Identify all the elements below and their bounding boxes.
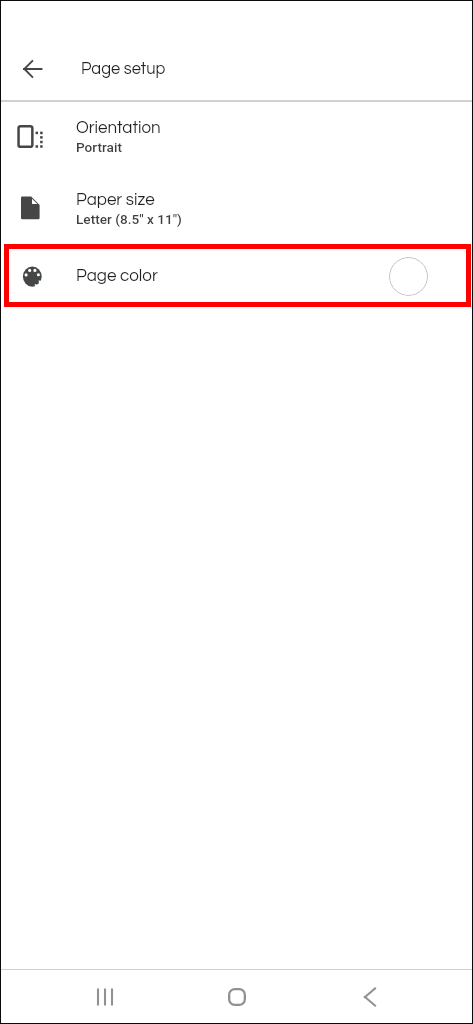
button[interactable]: Orientation — [0, 102, 473, 174]
staticText: Portrait — [76, 139, 122, 155]
staticText: Page color — [76, 267, 158, 285]
button[interactable]: Paper size — [0, 174, 473, 246]
staticText: Letter (8.5" x 11") — [76, 211, 182, 227]
staticText: Page setup — [81, 60, 166, 77]
staticText: Orientation — [76, 119, 161, 137]
button[interactable]: Back — [328, 970, 412, 1024]
button[interactable]: Page color — [0, 246, 473, 306]
staticText: Paper size — [76, 191, 155, 209]
button[interactable]: Recent apps — [63, 970, 147, 1024]
button[interactable]: Home — [195, 970, 279, 1024]
button[interactable]: Back — [9, 45, 57, 93]
